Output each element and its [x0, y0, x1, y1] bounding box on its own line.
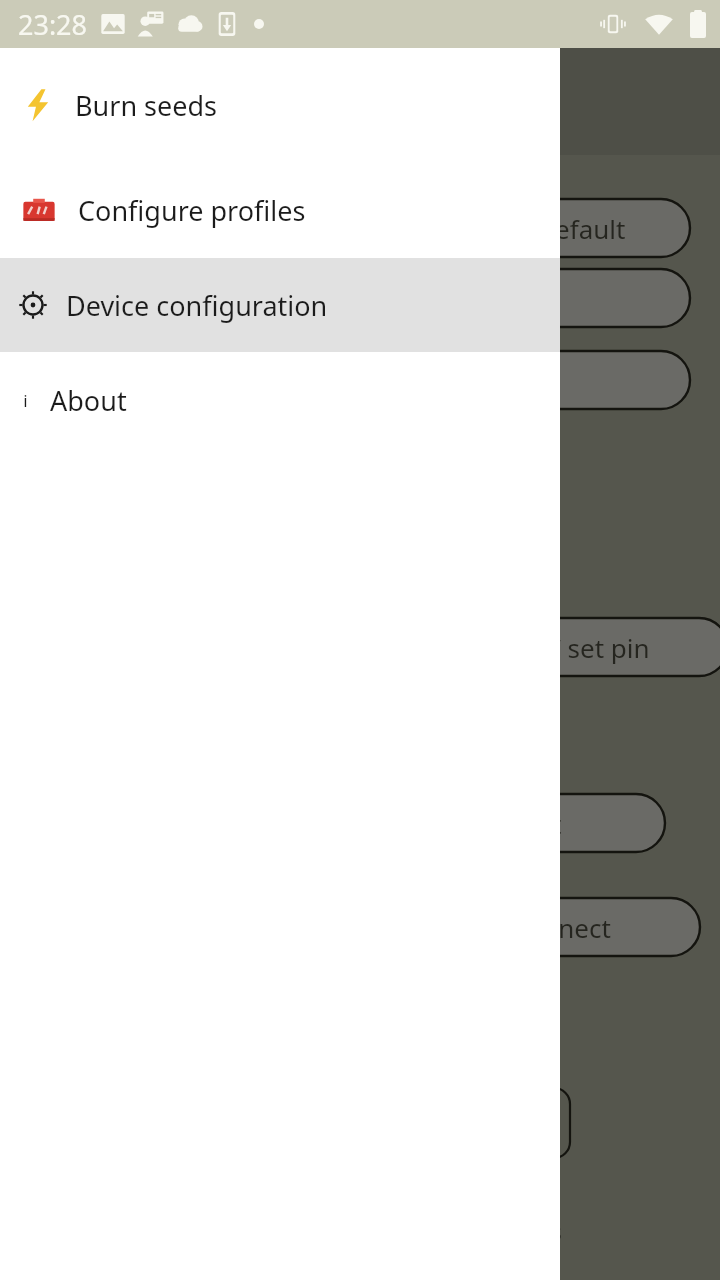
staticText: Burn seeds: [75, 87, 218, 124]
button[interactable]: Set: [420, 794, 665, 852]
button[interactable]: Device configuration: [0, 258, 560, 352]
button[interactable]: [430, 269, 690, 327]
staticText: Set default: [494, 211, 626, 246]
button[interactable]: Erase / set pin: [400, 618, 720, 676]
other: Burn seeds: [21, 88, 55, 122]
button[interactable]: Set default: [430, 199, 690, 257]
button[interactable]: [430, 351, 690, 409]
button[interactable]: Burn seeds: [0, 48, 560, 162]
staticText: 23:28: [18, 6, 88, 43]
staticText: Configure profiles: [78, 192, 306, 229]
staticText: i: [23, 389, 28, 411]
button[interactable]: About: [0, 352, 560, 448]
other: Configure profiles: [22, 193, 56, 227]
staticText: Options: [480, 1216, 562, 1246]
staticText: About: [50, 382, 127, 419]
staticText: Connect: [510, 910, 611, 945]
staticText: Erase / set pin: [478, 630, 650, 665]
staticText: Device configuration: [66, 287, 328, 324]
other: About: [14, 389, 36, 411]
button[interactable]: Configure profiles: [0, 162, 560, 258]
staticText: Set: [523, 806, 562, 841]
other: Device configuration: [19, 291, 47, 319]
button[interactable]: Connect: [420, 898, 700, 956]
